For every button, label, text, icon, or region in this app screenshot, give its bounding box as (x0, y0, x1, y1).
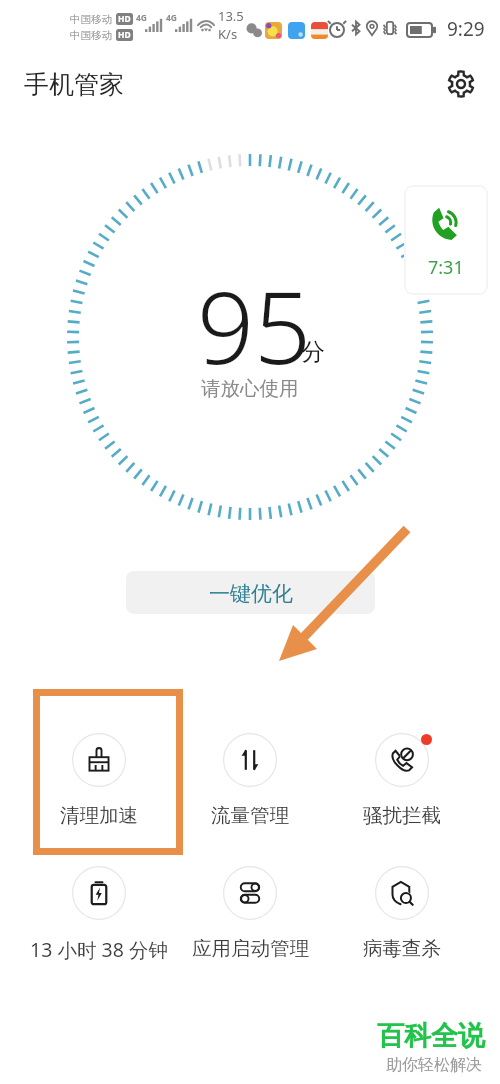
staticText: 13.5 (218, 7, 244, 25)
staticText: 4G (166, 12, 178, 24)
button[interactable]: 骚扰拦截 (326, 733, 478, 833)
button[interactable]: 病毒查杀 (326, 866, 478, 966)
button[interactable]: Settings (443, 66, 479, 102)
staticText: K/s (218, 25, 238, 43)
button[interactable]: 应用启动管理 (174, 866, 326, 966)
button[interactable]: 流量管理 (174, 733, 326, 833)
staticText: 病毒查杀 (363, 936, 441, 961)
staticText: 百科全说 (377, 1019, 485, 1053)
staticText: 分 (301, 337, 325, 367)
button[interactable]: Ongoing call (406, 187, 486, 293)
staticText: 请放心使用 (201, 376, 299, 401)
staticText: 手机管家 (24, 69, 124, 100)
staticText: 9:29 (447, 16, 485, 42)
staticText: 清理加速 (60, 803, 138, 828)
staticText: 中国移动 (70, 13, 112, 26)
staticText: 一键优化 (209, 581, 293, 607)
staticText: 流量管理 (211, 803, 289, 828)
staticText: HD (118, 13, 131, 25)
staticText: 应用启动管理 (192, 936, 309, 961)
button[interactable]: 13 小时 38 分钟 (23, 866, 175, 966)
button[interactable]: 一键优化 (126, 571, 375, 614)
staticText: 助你轻松解决 (386, 1055, 482, 1075)
staticText: 95 (197, 257, 312, 393)
button[interactable]: 清理加速 (23, 733, 175, 833)
staticText: 7:31 (428, 255, 464, 280)
staticText: 13 小时 38 分钟 (30, 936, 168, 963)
staticText: 骚扰拦截 (363, 803, 441, 828)
staticText: HD (118, 29, 131, 41)
staticText: 中国移动 (70, 29, 112, 42)
staticText: 4G (136, 12, 148, 24)
